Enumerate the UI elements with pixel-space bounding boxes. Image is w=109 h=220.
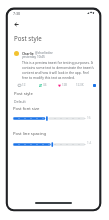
staticText: yesterday 10:45 [22, 55, 45, 59]
button[interactable]: Reply [18, 82, 26, 88]
staticText: Post style [14, 34, 42, 42]
staticText: Charlie [22, 51, 34, 55]
button[interactable]: Post style [7, 91, 100, 104]
staticText: 12 [22, 83, 26, 87]
button[interactable]: Post line spacing [13, 141, 91, 148]
staticText: 1.4 [87, 141, 92, 145]
staticText: Post style [14, 91, 33, 97]
button[interactable]: Back [10, 18, 22, 30]
button[interactable]: Post font size [13, 115, 91, 122]
staticText: 128 [62, 83, 67, 87]
staticText: This is a preview tweet for testing purp… [22, 60, 94, 80]
button[interactable]: Share [91, 82, 97, 88]
button[interactable]: Repost [39, 82, 47, 88]
staticText: Default [14, 99, 26, 104]
staticText: 34 [43, 83, 47, 87]
staticText: Post font size [13, 106, 40, 112]
staticText: 7:30 [13, 11, 21, 16]
staticText: 16 [87, 116, 91, 120]
button[interactable]: Like [58, 82, 67, 88]
staticText: 12.3K [76, 83, 84, 87]
staticText: Post line spacing [13, 131, 47, 137]
staticText: @charliedev [35, 51, 53, 55]
